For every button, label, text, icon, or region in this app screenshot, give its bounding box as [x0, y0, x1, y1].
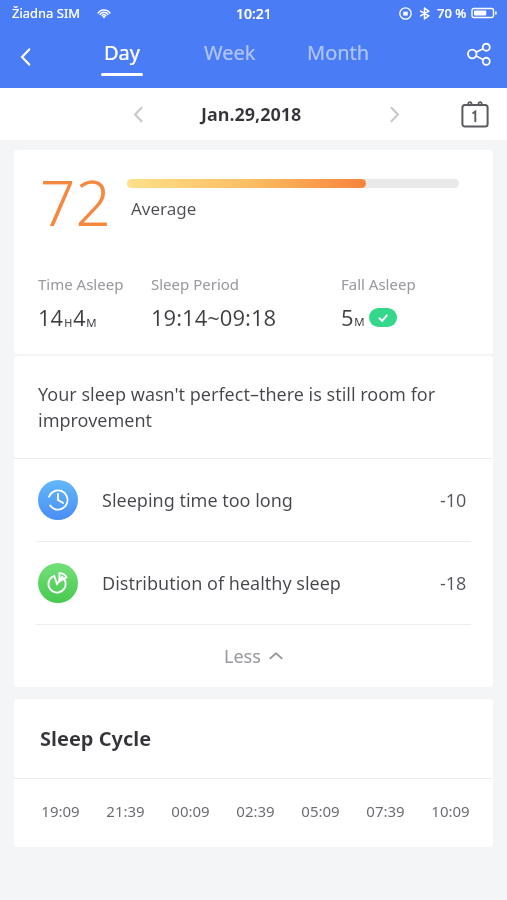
- staticText: Fall Asleep: [341, 274, 416, 294]
- staticText: м: [354, 311, 365, 330]
- staticText: 00:09: [158, 801, 223, 821]
- staticText: Average: [131, 197, 197, 220]
- staticText: 5: [341, 302, 354, 332]
- button[interactable]: Distribution of healthy sleep: [14, 542, 493, 624]
- button[interactable]: Day: [86, 26, 158, 88]
- staticText: 05:09: [288, 801, 353, 821]
- button[interactable]: Sleeping time too long: [14, 459, 493, 541]
- staticText: н: [64, 312, 73, 331]
- staticText: Time Asleep: [38, 274, 124, 294]
- staticText: -18: [440, 571, 467, 596]
- staticText: 10:09: [418, 801, 483, 821]
- staticText: Less: [224, 644, 261, 669]
- staticText: Sleep Cycle: [40, 725, 152, 752]
- staticText: 19:09: [28, 801, 93, 821]
- staticText: Sleeping time too long: [102, 488, 440, 513]
- staticText: 21:39: [93, 801, 158, 821]
- button[interactable]: Jan.29,2018: [201, 102, 302, 127]
- button[interactable]: Next day: [374, 94, 414, 134]
- button[interactable]: Less: [14, 625, 493, 687]
- staticText: 4: [73, 302, 86, 332]
- button[interactable]: Open calendar: [451, 90, 499, 138]
- staticText: Your sleep wasn't perfect–there is still…: [38, 382, 473, 432]
- button[interactable]: Previous day: [118, 94, 158, 134]
- staticText: Week: [204, 39, 256, 66]
- staticText: -10: [440, 488, 467, 513]
- staticText: 72: [40, 160, 111, 244]
- staticText: Sleep Period: [151, 274, 240, 294]
- staticText: 14: [38, 302, 64, 332]
- staticText: Month: [307, 39, 370, 66]
- staticText: Distribution of healthy sleep: [102, 571, 440, 596]
- staticText: 70 %: [437, 4, 467, 22]
- staticText: 07:39: [353, 801, 418, 821]
- button[interactable]: Month: [292, 26, 384, 88]
- button[interactable]: Back: [0, 31, 52, 83]
- staticText: 19:14~09:18: [151, 302, 277, 332]
- staticText: 02:39: [223, 801, 288, 821]
- staticText: Day: [104, 39, 141, 66]
- staticText: м: [86, 312, 97, 331]
- staticText: Žiadna SIM: [12, 4, 81, 22]
- button[interactable]: Share: [451, 29, 507, 85]
- button[interactable]: Week: [188, 26, 272, 88]
- staticText: 10:21: [236, 4, 272, 23]
